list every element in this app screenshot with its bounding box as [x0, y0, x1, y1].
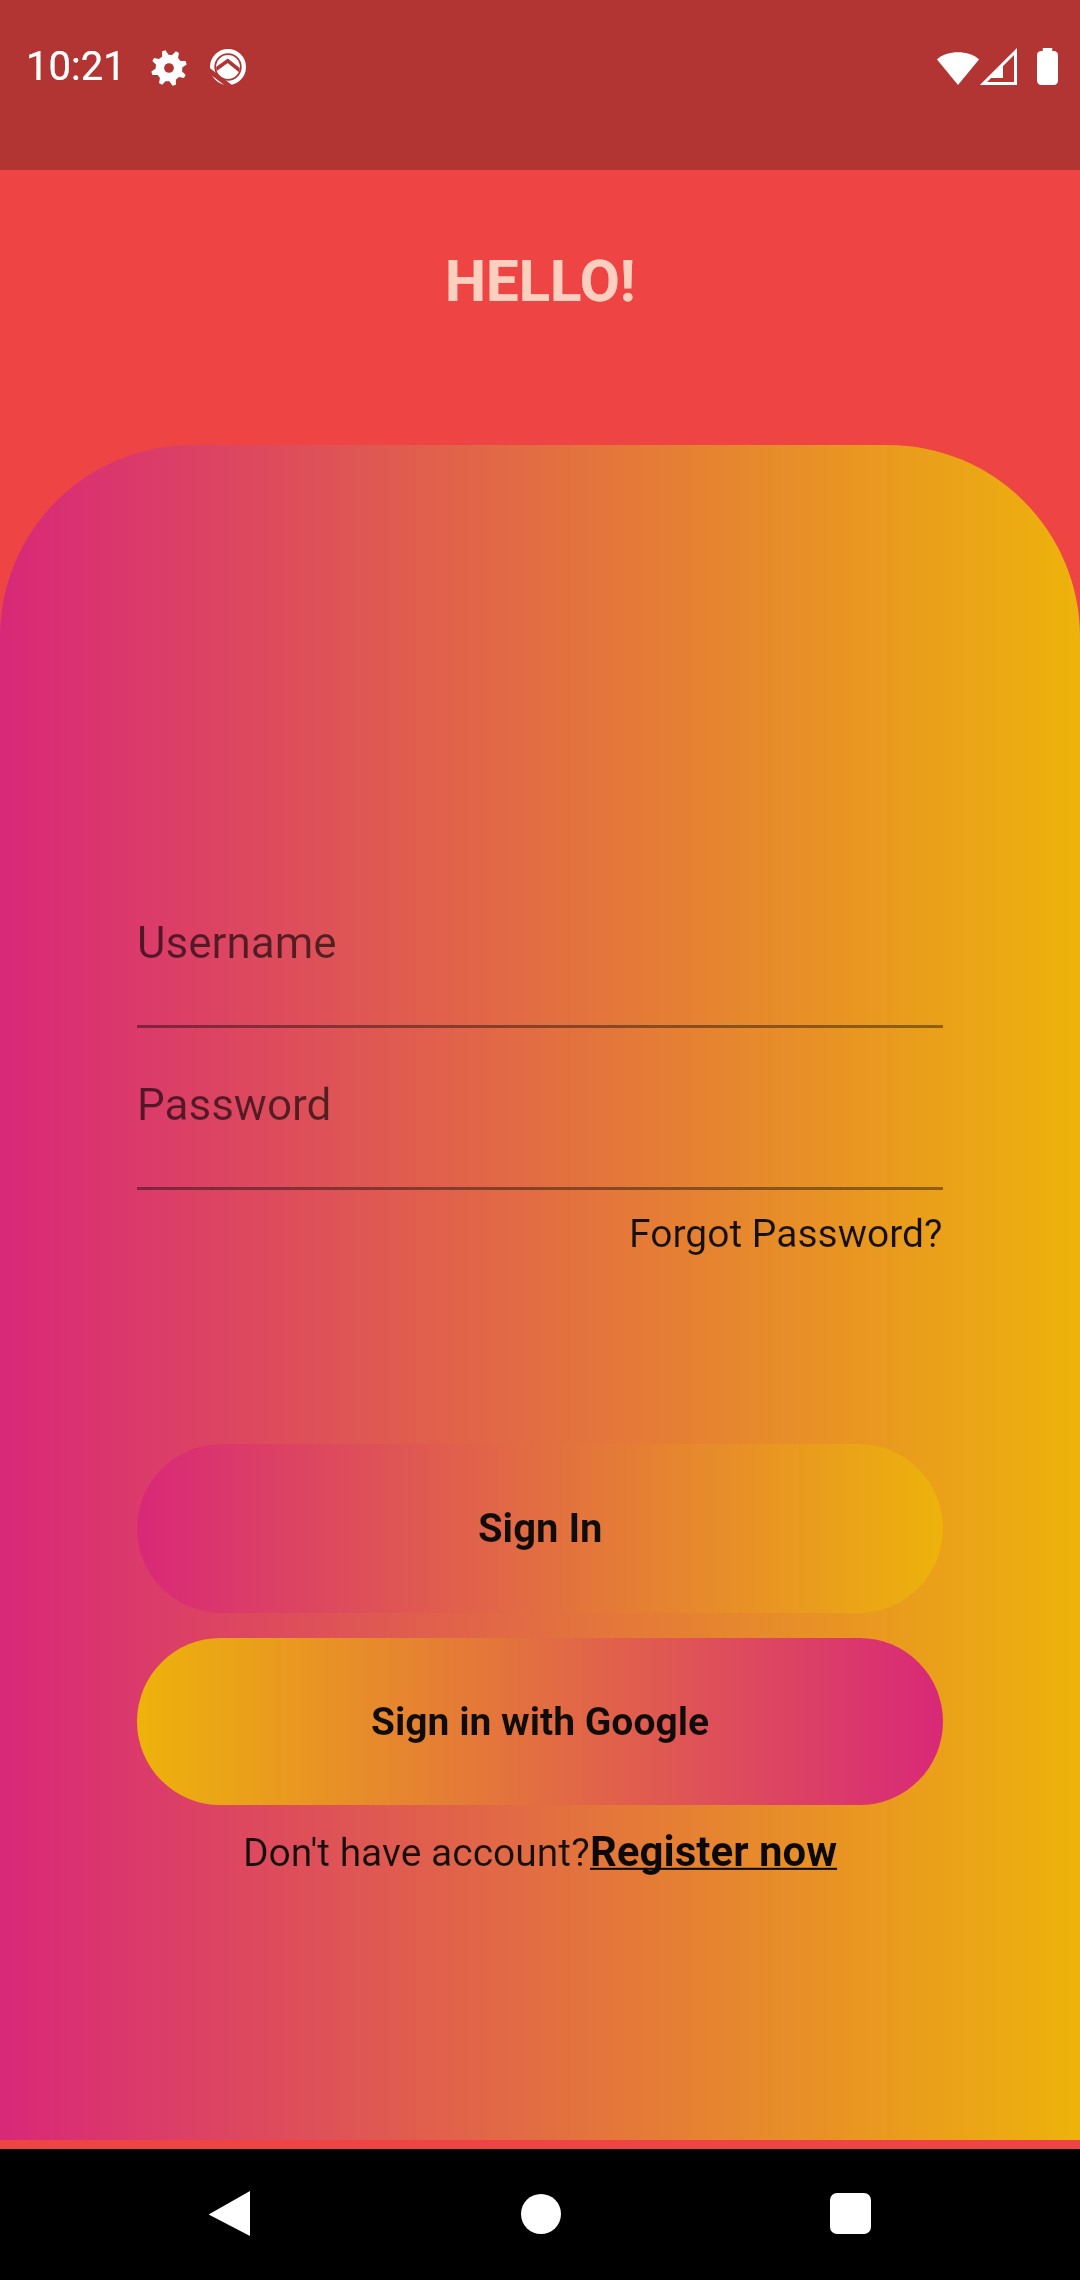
button[interactable]: Sign in with Google [137, 1638, 943, 1805]
staticText: Sign in with Google [371, 1699, 710, 1745]
staticText: Don't have account? [243, 1830, 590, 1876]
staticText: 10:21 [26, 43, 126, 90]
button[interactable]: Forgot Password? [615, 1197, 957, 1271]
staticText: Username [137, 917, 337, 969]
staticText: HELLO! [445, 247, 636, 315]
button[interactable]: Home [488, 2161, 593, 2266]
button[interactable]: Register now [590, 1827, 838, 1876]
button[interactable]: Sign In [137, 1444, 943, 1613]
button[interactable]: Username [123, 900, 957, 1045]
staticText: Sign In [478, 1505, 603, 1552]
button[interactable]: Recent apps [798, 2161, 903, 2266]
staticText: Forgot Password? [629, 1211, 943, 1257]
button[interactable]: Password [123, 1062, 957, 1207]
staticText: Password [137, 1079, 332, 1131]
button[interactable]: Back [175, 2161, 280, 2266]
